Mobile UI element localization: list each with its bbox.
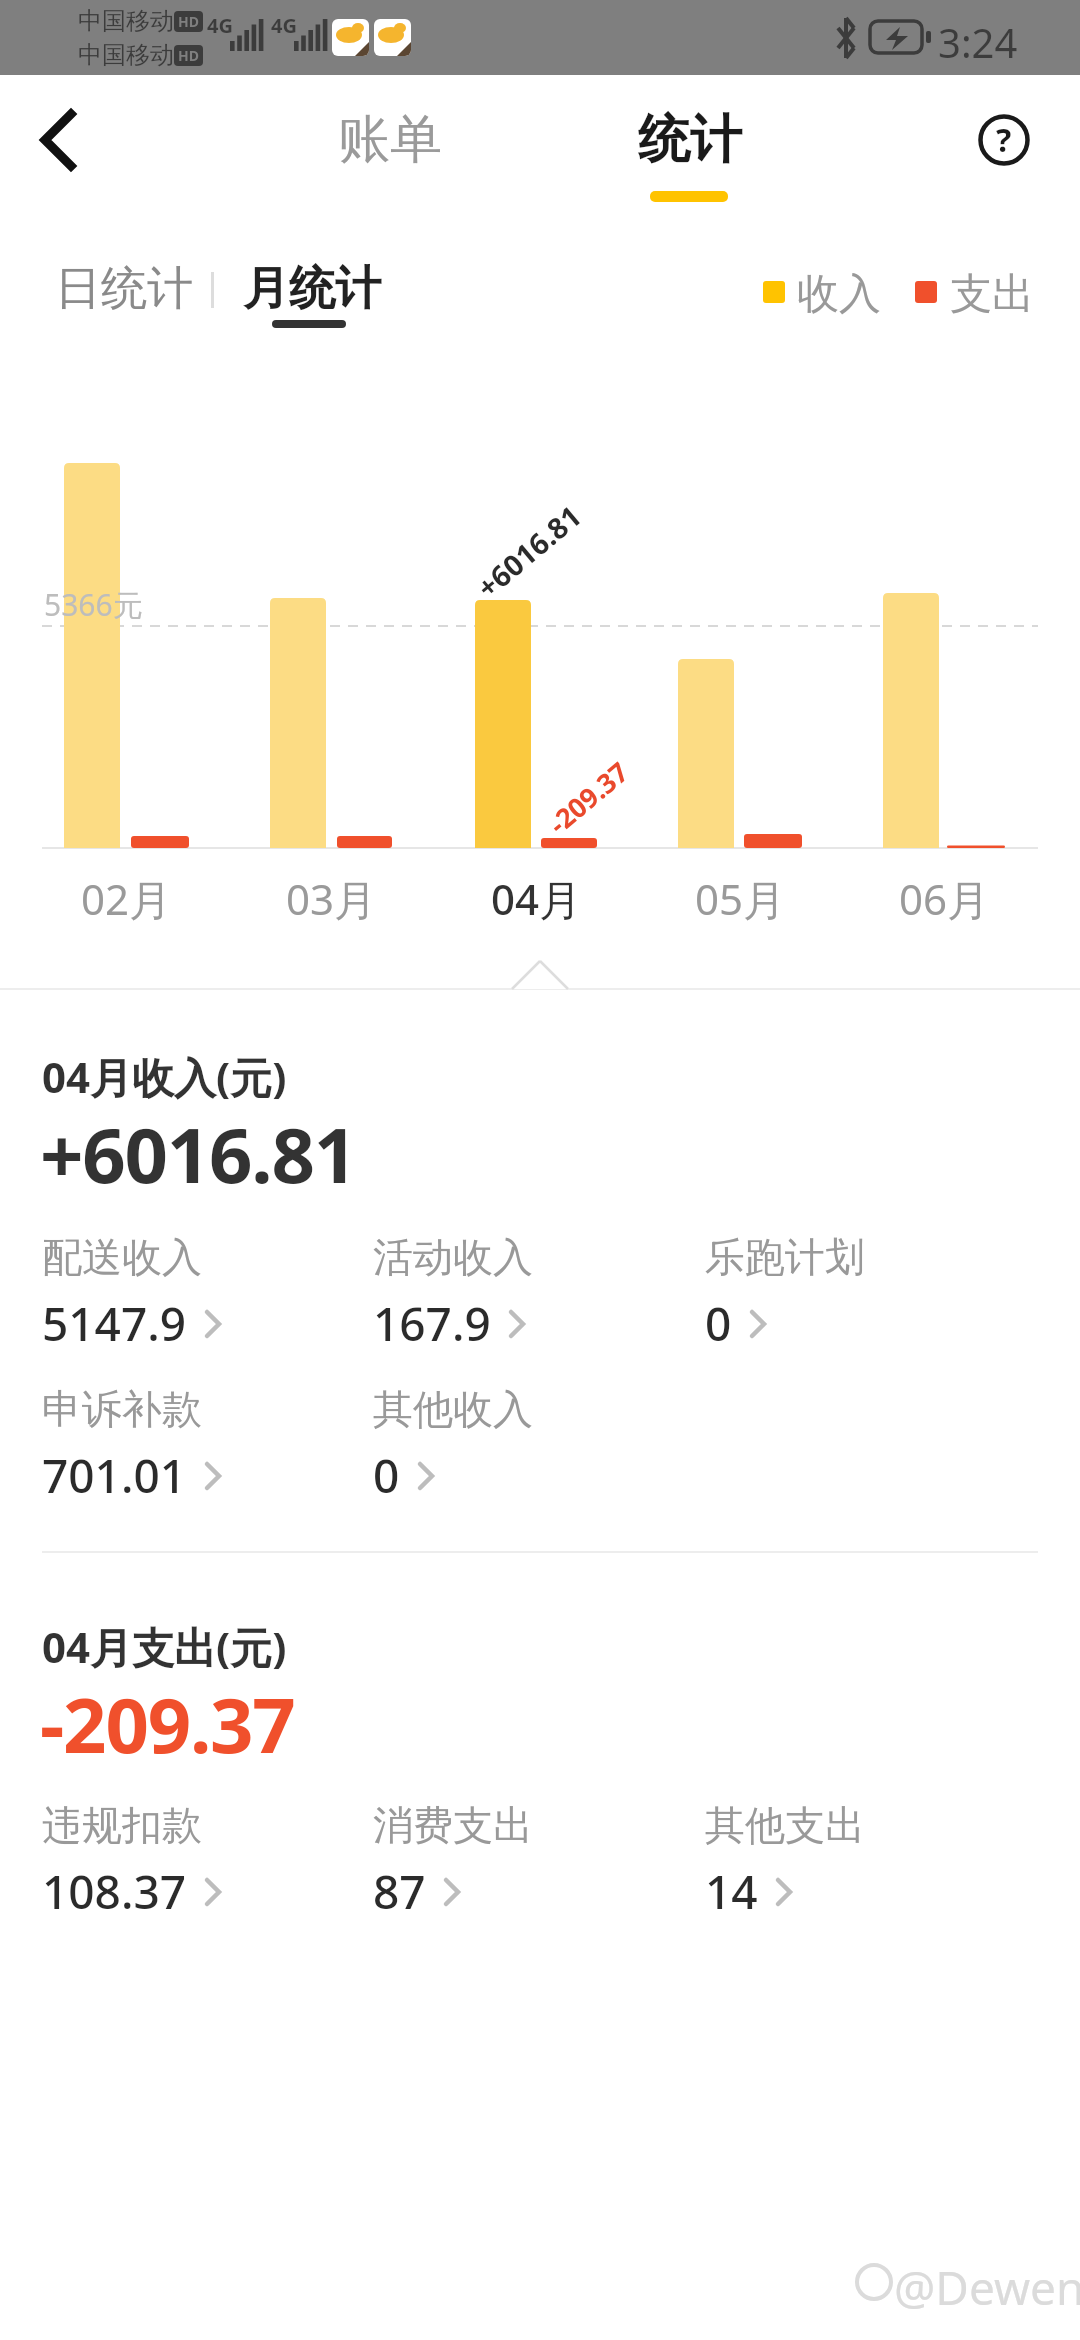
button[interactable]: 04月	[466, 868, 606, 928]
button[interactable]: 05月	[670, 868, 810, 928]
button[interactable]: 06月	[874, 868, 1014, 928]
button[interactable]: 03月	[261, 868, 401, 928]
button[interactable]: ?	[972, 108, 1036, 172]
staticText: 3:24	[938, 15, 1018, 69]
staticText: 0	[705, 1292, 732, 1355]
button[interactable]: 配送收入	[42, 1232, 221, 1355]
staticText: 中国移动	[78, 40, 174, 70]
staticText: 03月	[286, 870, 377, 927]
staticText: -209.37	[40, 1672, 295, 1776]
staticText: 统计	[638, 107, 742, 173]
staticText: 05月	[695, 870, 786, 927]
staticText: +6016.81	[40, 1102, 357, 1206]
button[interactable]: 日统计	[40, 252, 200, 332]
staticText: 其他收入	[373, 1384, 533, 1434]
staticText: 701.01	[42, 1444, 187, 1507]
staticText: 活动收入	[373, 1232, 533, 1282]
staticText: 账单	[338, 107, 442, 173]
staticText: 0	[373, 1444, 400, 1507]
staticText: 申诉补款	[42, 1384, 202, 1434]
staticText: HD	[178, 46, 199, 65]
staticText: 消费支出	[373, 1800, 533, 1850]
staticText: ?	[996, 118, 1012, 162]
staticText: -209.37	[540, 753, 636, 842]
staticText: +6016.81	[468, 496, 589, 606]
button[interactable]: 其他收入	[373, 1384, 533, 1507]
staticText: 4G	[207, 12, 233, 39]
staticText: 收入	[797, 268, 881, 321]
staticText: 04月支出(元)	[42, 1618, 287, 1675]
staticText: 中国移动	[78, 6, 174, 36]
staticText: 87	[373, 1860, 426, 1923]
button[interactable]: 违规扣款	[42, 1800, 221, 1923]
staticText: 配送收入	[42, 1232, 202, 1282]
button[interactable]: 统计	[590, 104, 790, 176]
staticText: HD	[178, 12, 199, 31]
button[interactable]: 申诉补款	[42, 1384, 221, 1507]
staticText: 108.37	[42, 1860, 187, 1923]
button[interactable]: 乐跑计划	[705, 1232, 865, 1355]
staticText: @Dewen	[894, 2256, 1080, 2319]
button[interactable]: 消费支出	[373, 1800, 533, 1923]
staticText: 乐跑计划	[705, 1232, 865, 1282]
staticText: 04月	[491, 870, 582, 927]
staticText: 04月收入(元)	[42, 1048, 287, 1105]
button[interactable]: 账单	[290, 104, 490, 176]
staticText: 4G	[271, 12, 297, 39]
button[interactable]: 活动收入	[373, 1232, 533, 1355]
staticText: 支出	[950, 268, 1034, 321]
button[interactable]: 02月	[56, 868, 196, 928]
staticText: 02月	[81, 870, 172, 927]
button[interactable]	[20, 102, 96, 178]
button[interactable]: 月统计	[228, 252, 388, 332]
staticText: 5366元	[44, 584, 143, 625]
staticText: 14	[705, 1860, 758, 1923]
staticText: 违规扣款	[42, 1800, 202, 1850]
button[interactable]: 其他支出	[705, 1800, 865, 1923]
staticText: 06月	[899, 870, 990, 927]
staticText: 5147.9	[42, 1292, 187, 1355]
staticText: 月统计	[243, 260, 381, 318]
staticText: 日统计	[55, 260, 193, 318]
staticText: 167.9	[373, 1292, 491, 1355]
staticText: 其他支出	[705, 1800, 865, 1850]
